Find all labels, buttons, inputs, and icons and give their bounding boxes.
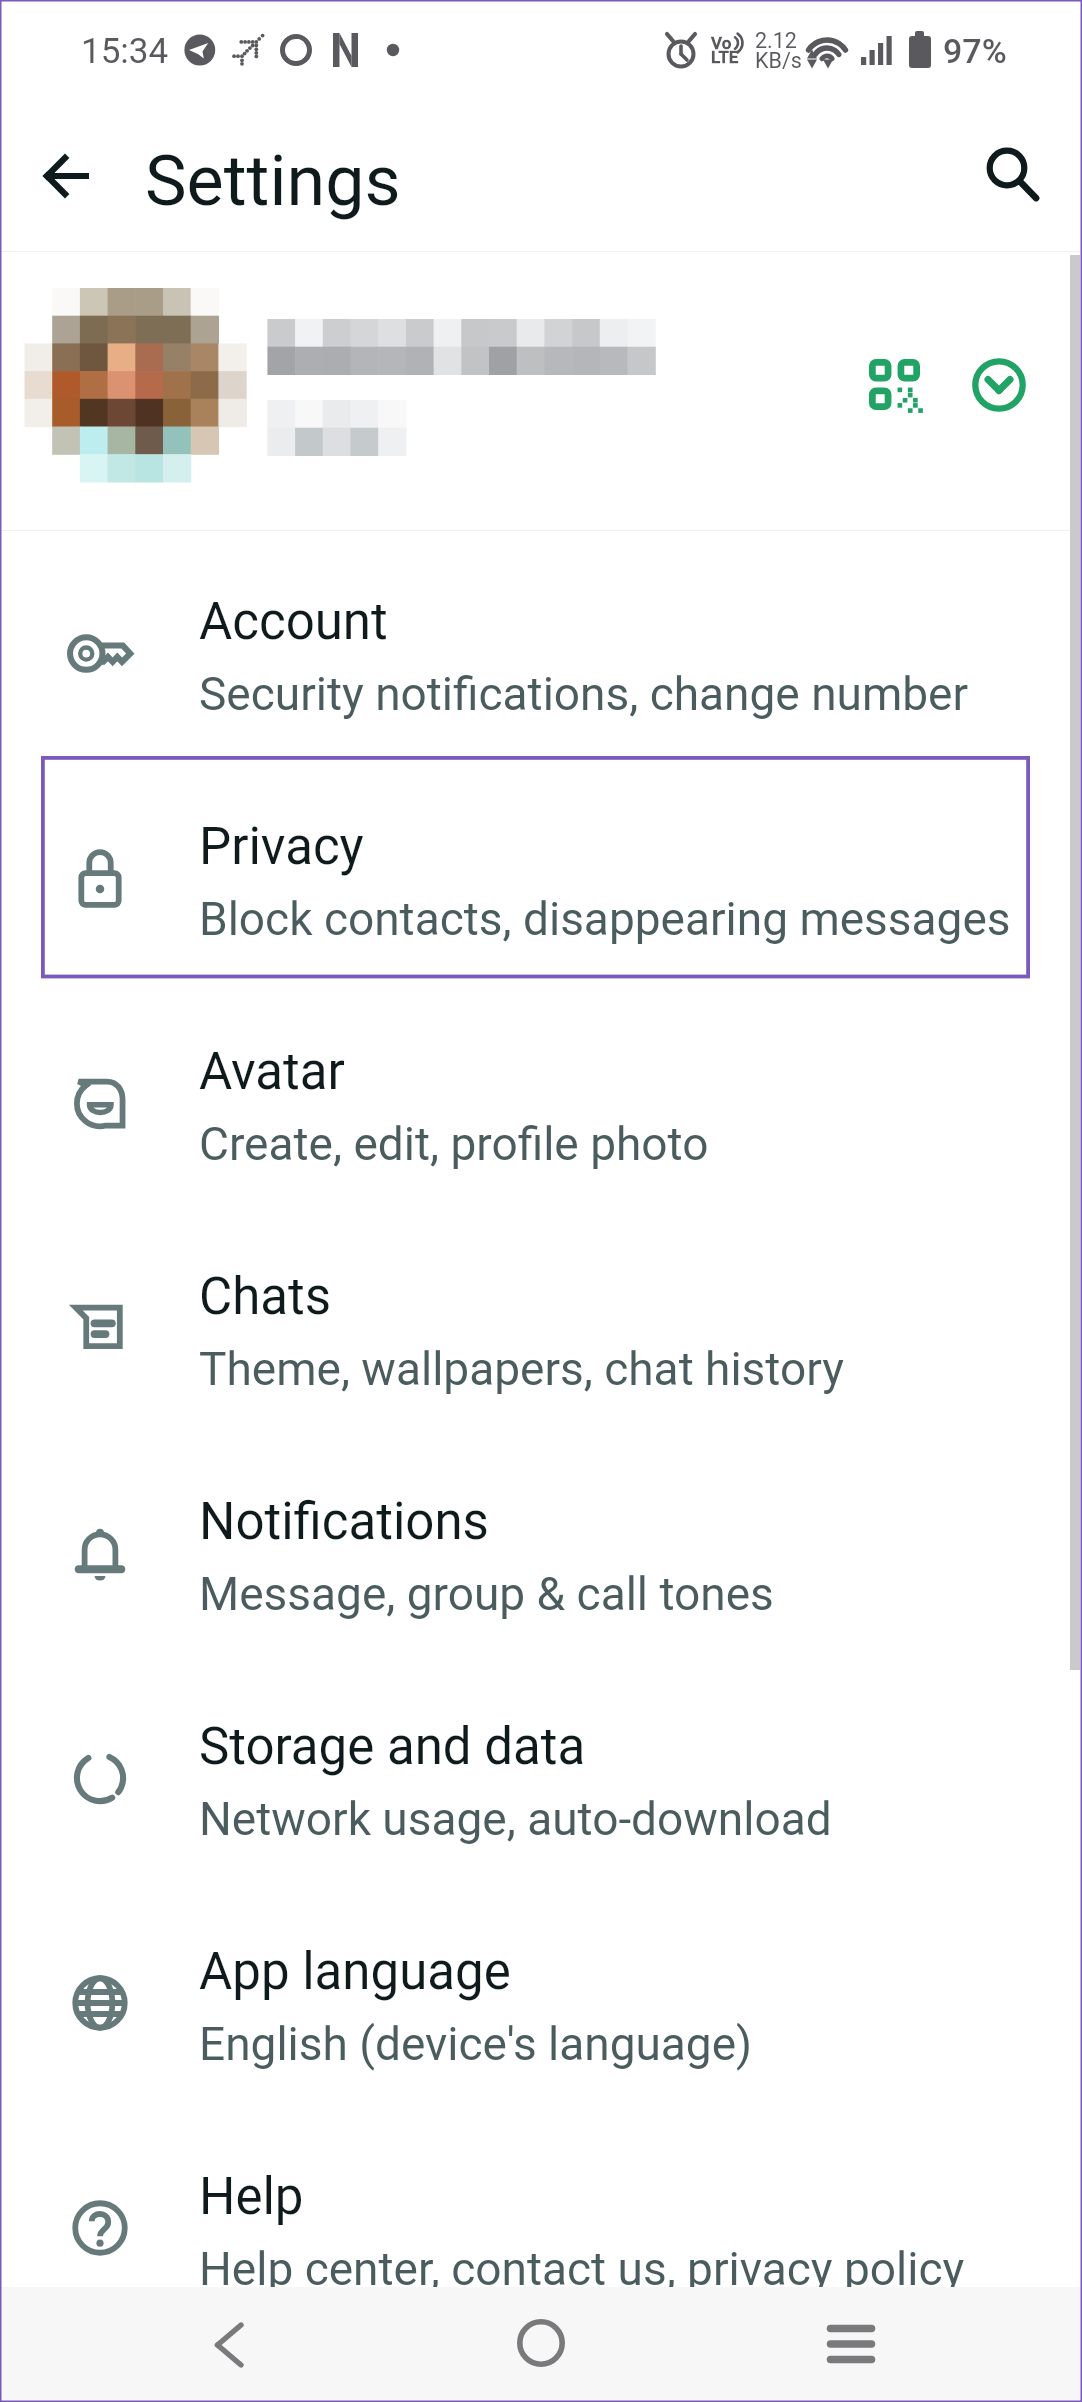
staticText: Privacy — [199, 817, 364, 877]
staticText: Avatar — [199, 1042, 345, 1102]
button[interactable]: Account — [0, 531, 1082, 756]
staticText: English (device's language) — [199, 2017, 753, 2071]
button[interactable]: Chats — [0, 1206, 1082, 1431]
staticText: Storage and data — [199, 1717, 586, 1777]
staticText: Notifications — [199, 1492, 489, 1552]
staticText: App language — [199, 1942, 511, 2002]
staticText: Network usage, auto-download — [199, 1792, 832, 1846]
staticText: KB/s — [755, 48, 802, 73]
staticText: Vo — [711, 33, 732, 53]
staticText: Theme, wallpapers, chat history — [199, 1342, 844, 1396]
button[interactable]: Avatar — [0, 981, 1082, 1206]
staticText: 15:34 — [81, 31, 169, 72]
staticText: Settings — [145, 140, 401, 222]
button[interactable]: Back — [23, 132, 111, 220]
button[interactable]: Recent apps — [796, 2289, 906, 2399]
staticText: 2.12 — [755, 28, 797, 53]
button[interactable]: Expand — [956, 342, 1042, 428]
button[interactable]: Notifications — [0, 1431, 1082, 1656]
staticText: Help center, contact us, privacy policy — [199, 2242, 965, 2296]
staticText: 97% — [943, 31, 1007, 71]
staticText: LTE — [711, 47, 739, 67]
button[interactable]: QR code — [0, 252, 1082, 530]
staticText: Message, group & call tones — [199, 1567, 774, 1621]
button[interactable]: Back — [174, 2290, 284, 2400]
button[interactable]: QR code — [851, 341, 937, 427]
staticText: Account — [199, 592, 388, 652]
staticText: Block contacts, disappearing messages — [199, 892, 1011, 946]
button[interactable]: Storage and data — [0, 1656, 1082, 1881]
button[interactable]: Search — [971, 134, 1059, 222]
button[interactable]: Help — [0, 2106, 1082, 2331]
staticText: Help — [199, 2167, 304, 2227]
button[interactable]: Home — [486, 2288, 596, 2398]
staticText: Security notifications, change number — [199, 667, 969, 721]
button[interactable]: App language — [0, 1881, 1082, 2106]
staticText: Create, edit, profile photo — [199, 1117, 709, 1171]
button[interactable]: Privacy — [0, 756, 1082, 981]
staticText: Chats — [199, 1267, 332, 1327]
